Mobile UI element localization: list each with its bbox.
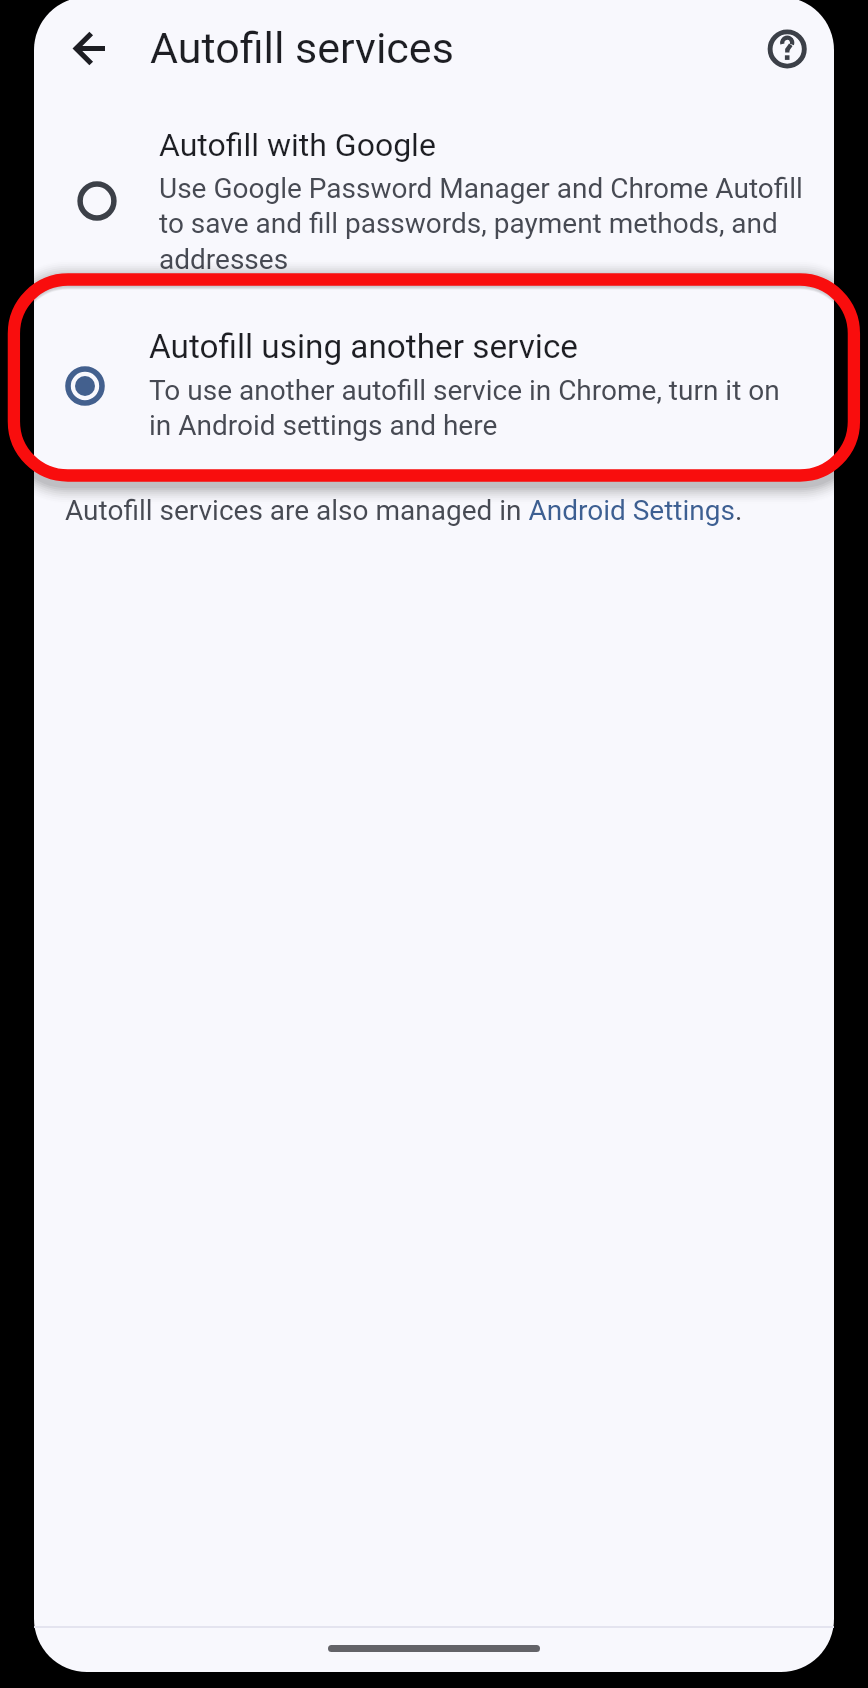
button[interactable]: Autofill with Google — [40, 110, 830, 275]
staticText: Autofill services — [150, 23, 454, 73]
button[interactable]: Autofill using another service — [30, 312, 830, 477]
staticText: Autofill using another service — [149, 327, 578, 366]
staticText: Autofill services are also managed in An… — [65, 494, 743, 527]
staticText: Use Google Password Manager and Chrome A… — [159, 172, 811, 276]
button[interactable]: Autofill services are also managed in An… — [60, 488, 760, 532]
button[interactable]: Help — [758, 20, 814, 76]
staticText: To use another autofill service in Chrom… — [149, 374, 801, 442]
button[interactable]: Navigate up — [60, 21, 116, 77]
staticText: Autofill with Google — [159, 126, 436, 164]
